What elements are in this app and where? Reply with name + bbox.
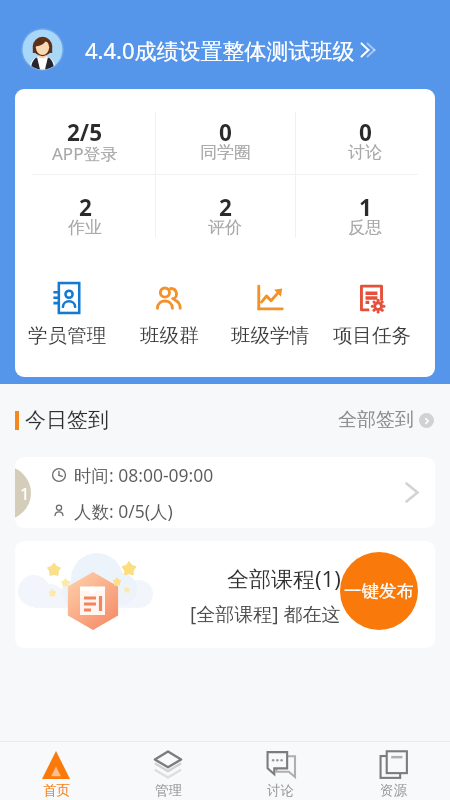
button[interactable]: 一键发布 (340, 552, 418, 630)
button[interactable]: 讨论 (224, 742, 337, 800)
button[interactable]: 班级群 (119, 281, 219, 348)
staticText: 同学圈 (200, 142, 251, 163)
staticText: 资源 (380, 782, 407, 799)
staticText: 评价 (208, 217, 242, 238)
button[interactable]: 项目任务 (322, 281, 422, 348)
staticText: 1 (359, 192, 372, 223)
button[interactable]: 0 (155, 117, 295, 183)
button[interactable]: 2/5 (15, 117, 155, 183)
button[interactable]: 1 (15, 457, 435, 528)
button[interactable]: 2 (15, 192, 155, 258)
staticText: 班级学情 (231, 323, 309, 348)
staticText: 0 (359, 117, 372, 148)
staticText: 今日签到 (25, 407, 109, 433)
staticText: 管理 (155, 782, 182, 799)
staticText: 讨论 (348, 142, 382, 163)
staticText: 全部签到 (338, 408, 414, 432)
staticText: 1 (20, 482, 30, 505)
staticText: 0 (219, 117, 232, 148)
staticText: 反思 (348, 217, 382, 238)
button[interactable]: 全部签到 (338, 408, 434, 432)
staticText: 学员管理 (28, 323, 106, 348)
staticText: 一键发布 (344, 580, 414, 602)
button[interactable]: 1 (295, 192, 435, 258)
staticText: 2 (79, 192, 92, 223)
staticText: 人数: 0/5(人) (74, 499, 173, 523)
button[interactable]: 资源 (337, 742, 450, 800)
staticText: 时间: 08:00-09:00 (74, 463, 214, 487)
button[interactable]: 学员管理 (17, 281, 117, 348)
staticText: 2/5 (67, 117, 103, 148)
staticText: 项目任务 (333, 323, 411, 348)
staticText: 4.4.0成绩设置整体测试班级 (85, 35, 355, 65)
staticText: 2 (219, 192, 232, 223)
button[interactable]: 2 (155, 192, 295, 258)
button[interactable]: 首页 (0, 742, 112, 800)
staticText: 作业 (68, 217, 102, 238)
staticText: 首页 (43, 782, 70, 799)
staticText: [全部课程] 都在这 (190, 601, 341, 627)
staticText: 全部课程(1) (227, 563, 341, 593)
button[interactable]: 全部课程(1) (15, 541, 435, 648)
button[interactable]: 0 (295, 117, 435, 183)
staticText: 班级群 (140, 323, 199, 348)
staticText: APP登录 (52, 142, 118, 165)
button[interactable]: 管理 (112, 742, 224, 800)
button[interactable]: 班级学情 (220, 281, 320, 348)
staticText: 讨论 (267, 782, 294, 799)
